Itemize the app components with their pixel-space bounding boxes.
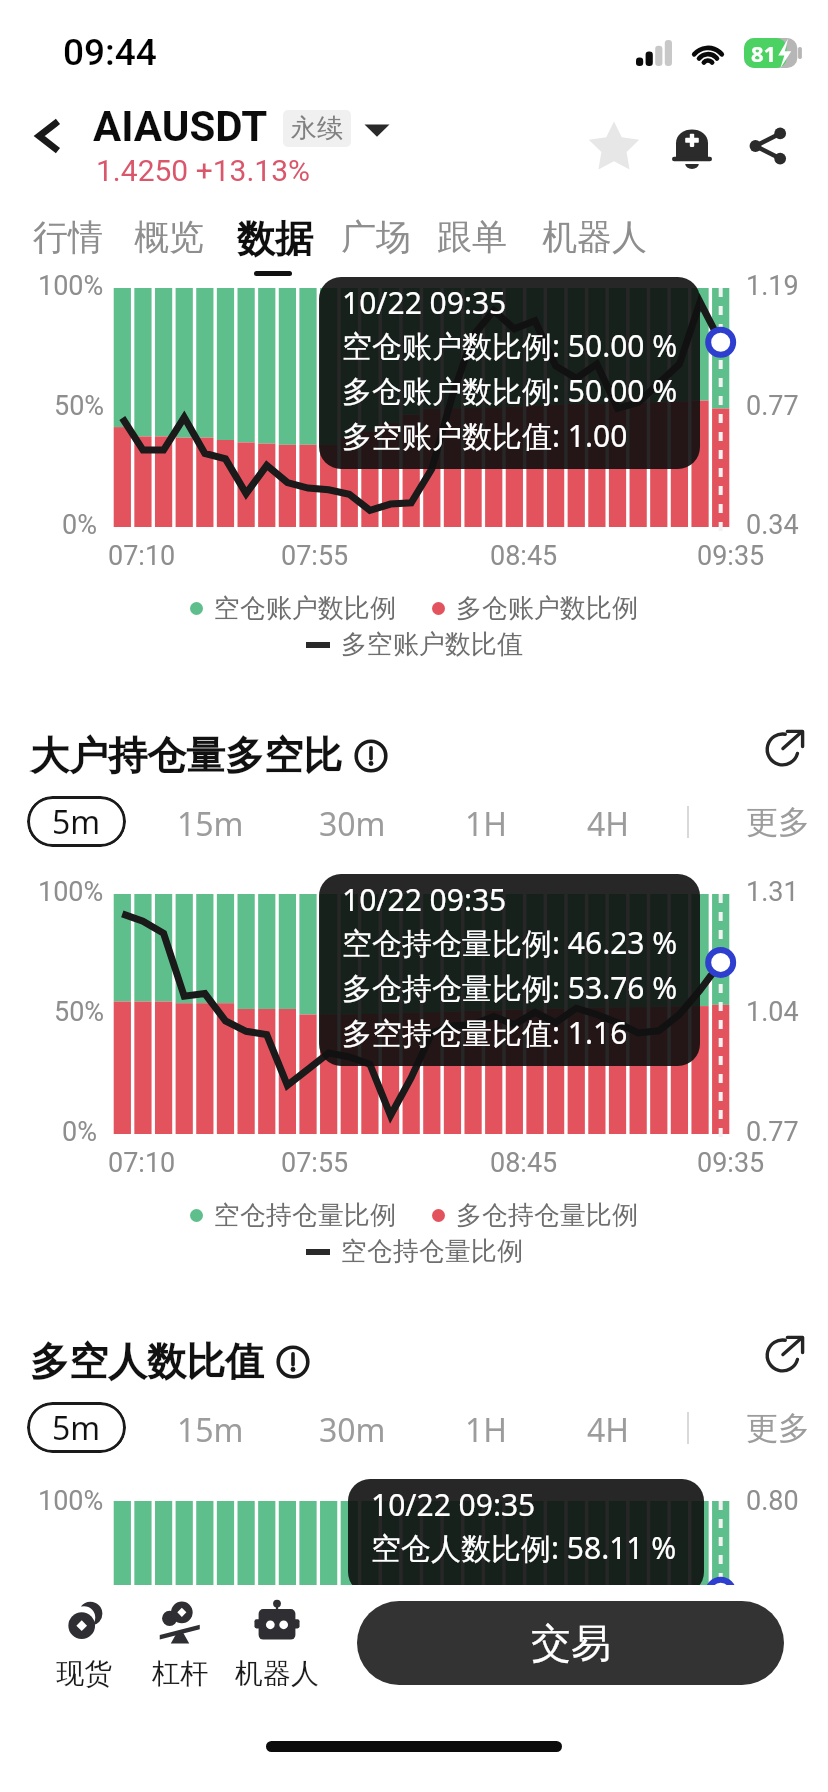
- staticText: 30m: [319, 1408, 386, 1452]
- button[interactable]: 5m: [27, 796, 126, 847]
- button[interactable]: 广场: [331, 209, 421, 265]
- staticText: 1H: [465, 802, 508, 846]
- staticText: 09:35: [697, 540, 765, 572]
- staticText: 08:45: [490, 1147, 558, 1179]
- staticText: 数据: [237, 215, 313, 263]
- staticText: 07:10: [108, 540, 176, 572]
- button[interactable]: 交易: [357, 1601, 784, 1685]
- staticText: 08:45: [490, 540, 558, 572]
- staticText: 15m: [177, 1408, 244, 1452]
- staticText: 更多: [746, 1408, 810, 1448]
- button[interactable]: 30m: [319, 802, 386, 846]
- staticText: 大户持仓量多空比: [30, 731, 342, 780]
- staticText: 0.34: [746, 509, 799, 541]
- button[interactable]: 现货: [29, 1598, 139, 1691]
- button[interactable]: 4H: [587, 802, 630, 846]
- staticText: 09:44: [63, 31, 157, 74]
- staticText: 交易: [531, 1618, 611, 1668]
- staticText: 多仓账户数比例: [456, 592, 638, 625]
- staticText: 09:35: [697, 1147, 765, 1179]
- staticText: 100%: [38, 876, 104, 908]
- button[interactable]: 4H: [587, 1408, 630, 1452]
- button[interactable]: 5m: [27, 1402, 126, 1453]
- button[interactable]: 概览: [124, 209, 214, 265]
- staticText: 30m: [319, 802, 386, 846]
- button[interactable]: 15m: [177, 802, 244, 846]
- staticText: 1.31: [746, 876, 799, 908]
- staticText: 07:55: [281, 540, 349, 572]
- button[interactable]: 杠杆: [125, 1598, 235, 1691]
- staticText: 机器人: [542, 215, 647, 259]
- staticText: 100%: [38, 1485, 104, 1517]
- staticText: 0.80: [746, 1485, 799, 1517]
- button[interactable]: Open full screen chart: [762, 724, 808, 770]
- button[interactable]: 更多: [746, 1408, 810, 1448]
- staticText: 10/22 09:35 空仓人数比例: 58.11 %: [371, 1482, 677, 1570]
- staticText: 0.77: [746, 1116, 799, 1148]
- staticText: 100%: [38, 270, 104, 302]
- button[interactable]: 1H: [465, 1408, 508, 1452]
- button[interactable]: 机器人: [222, 1598, 332, 1691]
- staticText: 4H: [587, 1408, 630, 1452]
- staticText: 1H: [465, 1408, 508, 1452]
- button[interactable]: Price alert: [664, 118, 720, 174]
- staticText: 多空人数比值: [30, 1337, 264, 1386]
- staticText: 0.77: [746, 390, 799, 422]
- staticText: 07:10: [108, 1147, 176, 1179]
- staticText: 0%: [62, 1116, 97, 1148]
- button[interactable]: 跟单: [427, 209, 517, 265]
- staticText: 空仓持仓量比例: [341, 1235, 523, 1268]
- button[interactable]: 更多: [746, 802, 810, 842]
- staticText: AIAUSDT: [93, 102, 268, 151]
- staticText: 1.19: [746, 270, 799, 302]
- button[interactable]: Favorite: [586, 118, 642, 174]
- staticText: 07:55: [281, 1147, 349, 1179]
- staticText: 10/22 09:35 空仓账户数比例: 50.00 % 多仓账户数比例: 50…: [342, 280, 678, 458]
- staticText: 1.04: [746, 996, 799, 1028]
- button[interactable]: 数据: [227, 209, 323, 269]
- staticText: 0%: [62, 509, 97, 541]
- staticText: 永续: [291, 112, 343, 145]
- button[interactable]: 行情: [23, 209, 113, 265]
- staticText: 更多: [746, 802, 810, 842]
- staticText: 概览: [134, 215, 204, 259]
- staticText: 广场: [341, 215, 411, 259]
- staticText: 5m: [52, 800, 101, 844]
- staticText: 多空账户数比值: [341, 628, 523, 661]
- staticText: 5m: [52, 1406, 101, 1450]
- staticText: 1.4250 +13.13%: [96, 153, 310, 188]
- button[interactable]: Open full screen chart: [762, 1330, 808, 1376]
- staticText: 行情: [33, 215, 103, 259]
- button[interactable]: 15m: [177, 1408, 244, 1452]
- staticText: 10/22 09:35 空仓持仓量比例: 46.23 % 多仓持仓量比例: 53…: [342, 877, 678, 1055]
- staticText: 跟单: [437, 215, 507, 259]
- staticText: 81: [751, 38, 777, 68]
- staticText: 机器人: [235, 1656, 319, 1691]
- button[interactable]: Back: [22, 110, 74, 162]
- staticText: 4H: [587, 802, 630, 846]
- staticText: 15m: [177, 802, 244, 846]
- button[interactable]: Share: [740, 118, 796, 174]
- button[interactable]: 机器人: [532, 209, 657, 265]
- staticText: 空仓账户数比例: [214, 592, 396, 625]
- staticText: 50%: [54, 390, 105, 422]
- staticText: 杠杆: [152, 1656, 208, 1691]
- button[interactable]: 30m: [319, 1408, 386, 1452]
- staticText: 空仓持仓量比例: [214, 1199, 396, 1232]
- staticText: 现货: [56, 1656, 112, 1691]
- button[interactable]: 1H: [465, 802, 508, 846]
- staticText: 50%: [54, 996, 105, 1028]
- staticText: 多仓持仓量比例: [456, 1199, 638, 1232]
